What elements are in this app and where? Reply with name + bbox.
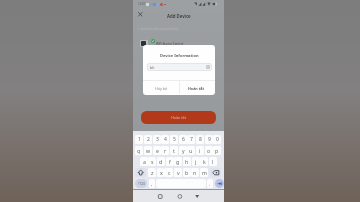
button[interactable]: v <box>174 168 182 177</box>
staticText: 9 <box>208 136 211 143</box>
button[interactable]: l <box>209 157 217 166</box>
staticText: b <box>185 169 189 176</box>
staticText: p <box>215 147 219 154</box>
staticText: x <box>160 169 163 176</box>
staticText: Device Information <box>160 53 199 58</box>
button[interactable]: c <box>165 168 173 177</box>
staticText: 2 <box>147 136 150 143</box>
button[interactable]: r <box>161 146 169 155</box>
button[interactable]: ?123 <box>135 179 147 188</box>
button[interactable]: 9 <box>205 135 213 144</box>
staticText: v <box>177 169 180 176</box>
staticText: s <box>151 158 154 165</box>
button[interactable]: 7 <box>187 135 195 144</box>
button[interactable] <box>138 38 219 48</box>
button[interactable]: q <box>135 146 143 155</box>
button[interactable]: 2 <box>144 135 152 144</box>
staticText: 1 <box>138 136 141 143</box>
button[interactable] <box>135 168 146 177</box>
button[interactable]: e <box>153 146 161 155</box>
staticText: 4 <box>164 136 167 143</box>
button[interactable]: , <box>149 179 155 188</box>
staticText: d <box>159 158 163 165</box>
button[interactable] <box>192 190 203 202</box>
staticText: 1 device(s) added successfully <box>138 27 179 31</box>
staticText: 3 <box>156 136 159 143</box>
button[interactable] <box>215 179 224 188</box>
button[interactable]: b <box>183 168 191 177</box>
button[interactable]: f <box>166 157 174 166</box>
button[interactable]: 1 <box>135 135 143 144</box>
staticText: 12:51 <box>138 2 146 6</box>
button[interactable]: t <box>170 146 178 155</box>
button[interactable]: g <box>174 157 182 166</box>
staticText: j <box>195 158 197 165</box>
staticText: blr <box>150 65 155 70</box>
button[interactable]: k <box>200 157 208 166</box>
staticText: q <box>137 147 141 154</box>
button[interactable]: Hoàn tất <box>179 81 214 95</box>
staticText: Add Device <box>167 13 191 19</box>
staticText: ?123 <box>138 182 145 186</box>
staticText: i <box>199 147 201 154</box>
staticText: Hủy bỏ <box>155 86 168 91</box>
button[interactable] <box>155 190 166 202</box>
button[interactable]: a <box>140 157 148 166</box>
button[interactable]: blr <box>147 63 212 71</box>
button[interactable]: Hủy bỏ <box>143 81 179 95</box>
button[interactable]: d <box>157 157 165 166</box>
button[interactable]: m <box>200 168 208 177</box>
staticText: a <box>143 158 146 165</box>
button[interactable]: j <box>192 157 200 166</box>
button[interactable]: u <box>187 146 195 155</box>
staticText: h <box>185 158 189 165</box>
button[interactable]: h <box>183 157 191 166</box>
button[interactable] <box>138 12 143 17</box>
staticText: WiFi Access Control <box>156 42 184 46</box>
staticText: o <box>207 147 211 154</box>
button[interactable]: Hoàn tất <box>141 111 216 124</box>
button[interactable] <box>175 190 186 202</box>
staticText: w <box>146 147 151 154</box>
staticText: , <box>151 181 153 187</box>
button[interactable]: 4 <box>161 135 169 144</box>
button[interactable]: x <box>157 168 165 177</box>
staticText: 8 <box>199 136 202 143</box>
staticText: 5 <box>173 136 176 143</box>
staticText: g <box>176 158 180 165</box>
staticText: y <box>182 147 185 154</box>
staticText: 7 <box>190 136 193 143</box>
button[interactable]: p <box>213 146 221 155</box>
staticText: Hoàn tất <box>171 115 187 120</box>
button[interactable] <box>210 168 221 177</box>
staticText: t <box>173 147 175 154</box>
staticText: c <box>168 169 171 176</box>
staticText: l <box>212 158 214 165</box>
button[interactable]: i <box>196 146 204 155</box>
staticText: . <box>209 181 211 187</box>
staticText: m <box>202 169 207 176</box>
button[interactable]: 5 <box>170 135 178 144</box>
button[interactable]: y <box>179 146 187 155</box>
button[interactable]: 6 <box>179 135 187 144</box>
button[interactable]: 3 <box>153 135 161 144</box>
staticText: e <box>156 147 159 154</box>
button[interactable]: o <box>205 146 213 155</box>
button[interactable]: 0 <box>213 135 221 144</box>
button[interactable]: w <box>144 146 152 155</box>
staticText: u <box>189 147 193 154</box>
staticText: 0 <box>216 136 219 143</box>
staticText: Hoàn tất <box>188 86 205 91</box>
button[interactable]: n <box>191 168 199 177</box>
staticText: 6 <box>182 136 185 143</box>
button[interactable]: 8 <box>196 135 204 144</box>
staticText: f <box>169 158 171 165</box>
button[interactable]: . <box>207 179 213 188</box>
staticText: r <box>164 147 167 154</box>
staticText: n <box>193 169 197 176</box>
button[interactable]: s <box>148 157 156 166</box>
staticText: k <box>203 158 206 165</box>
button[interactable]: z <box>148 168 156 177</box>
staticText: z <box>151 169 154 176</box>
